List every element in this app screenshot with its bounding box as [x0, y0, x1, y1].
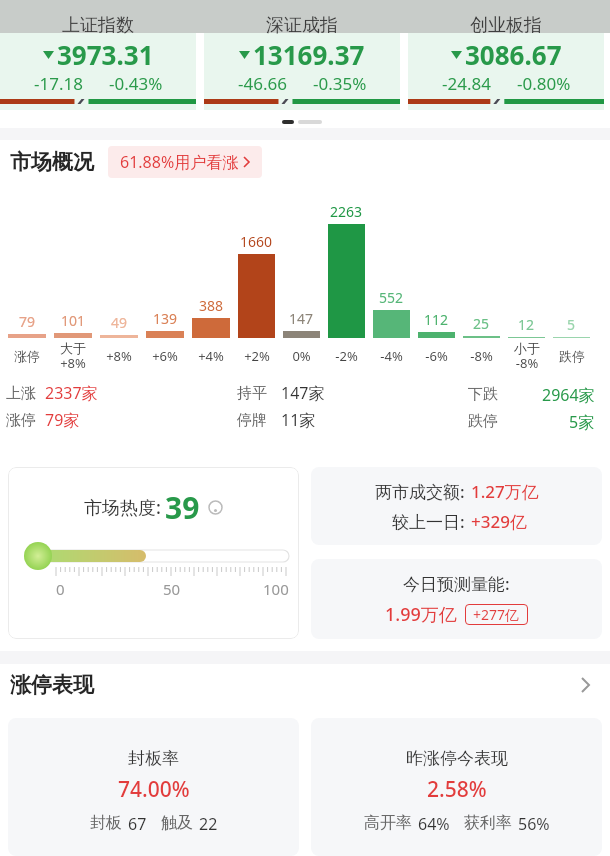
staticText: 101: [61, 311, 86, 330]
staticText: 11家: [281, 409, 316, 431]
staticText: 0%: [292, 347, 311, 365]
staticText: 3973.31: [57, 37, 154, 72]
staticText: 市场概况: [10, 149, 94, 175]
staticText: 5家: [569, 411, 595, 433]
staticText: 1660: [240, 232, 273, 251]
staticText: +6%: [152, 347, 178, 365]
staticText: 13169.37: [253, 37, 365, 72]
staticText: 涨停: [14, 348, 40, 364]
staticText: -0.80%: [517, 72, 571, 95]
staticText: 49: [111, 313, 128, 332]
staticText: 涨停表现: [10, 672, 94, 698]
staticText: 100: [263, 579, 289, 599]
staticText: -2%: [335, 347, 358, 365]
staticText: 67: [128, 813, 147, 835]
staticText: 触及: [161, 813, 193, 833]
staticText: -46.66: [238, 72, 287, 95]
staticText: 两市成交额:: [375, 480, 465, 503]
staticText: 2964家: [542, 384, 595, 406]
staticText: -0.35%: [313, 72, 367, 95]
staticText: 涨停: [6, 411, 36, 430]
staticText: -6%: [425, 347, 448, 365]
staticText: +329亿: [471, 510, 527, 533]
staticText: +4%: [198, 347, 224, 365]
staticText: 388: [199, 296, 224, 315]
button[interactable]: 深证成指: [204, 0, 400, 110]
staticText: 147: [289, 309, 314, 328]
staticText: +2%: [244, 347, 270, 365]
staticText: 79家: [45, 409, 80, 431]
staticText: 1.99万亿: [385, 602, 457, 627]
staticText: 2263: [330, 202, 363, 221]
staticText: +277亿: [473, 605, 520, 624]
staticText: 跌停: [468, 412, 498, 431]
button[interactable]: 涨停表现: [10, 664, 590, 706]
staticText: 获利率: [464, 813, 512, 833]
staticText: 56%: [518, 813, 550, 835]
staticText: -17.18: [34, 72, 83, 95]
staticText: 552: [379, 288, 404, 307]
staticText: 停牌: [237, 411, 267, 430]
button[interactable]: 61.88%用户看涨: [108, 146, 262, 178]
button[interactable]: 昨涨停今表现: [311, 718, 602, 856]
staticText: 1.27万亿: [471, 480, 539, 503]
staticText: 39: [165, 487, 200, 528]
button[interactable]: 市场热度:: [8, 467, 299, 639]
staticText: -0.43%: [109, 72, 163, 95]
staticText: 市场热度:: [84, 495, 161, 520]
staticText: 0: [56, 579, 65, 599]
staticText: 64%: [418, 813, 450, 835]
staticText: 22: [199, 813, 218, 835]
staticText: 今日预测量能:: [403, 572, 510, 595]
staticText: 50: [163, 579, 181, 599]
staticText: -8%: [470, 347, 493, 365]
staticText: 112: [424, 310, 449, 329]
staticText: 上涨: [6, 384, 36, 403]
button[interactable]: 创业板指: [408, 0, 604, 110]
staticText: 147家: [281, 382, 325, 404]
staticText: +8%: [106, 347, 132, 365]
staticText: 昨涨停今表现: [406, 748, 508, 769]
staticText: 深证成指: [266, 14, 338, 37]
staticText: 5: [567, 315, 576, 334]
staticText: 持平: [237, 384, 267, 403]
staticText: 74.00%: [118, 775, 190, 804]
staticText: 139: [153, 309, 178, 328]
staticText: 跌停: [559, 348, 585, 364]
staticText: 高开率: [364, 813, 412, 833]
button[interactable]: 上证指数: [0, 0, 196, 110]
staticText: 79: [19, 312, 36, 331]
staticText: 封板: [90, 813, 122, 833]
staticText: 封板率: [128, 748, 179, 769]
staticText: 小于 -8%: [514, 340, 540, 372]
button[interactable]: 封板率: [8, 718, 299, 856]
staticText: 61.88%用户看涨: [120, 151, 239, 173]
button[interactable]: 今日预测量能:: [311, 559, 602, 639]
button[interactable]: 两市成交额:: [311, 467, 602, 545]
staticText: 2337家: [45, 382, 98, 404]
staticText: 3086.67: [465, 37, 562, 72]
staticText: -24.84: [442, 72, 491, 95]
staticText: 创业板指: [470, 14, 542, 37]
staticText: 大于 +8%: [60, 340, 86, 372]
staticText: 上证指数: [62, 14, 134, 37]
staticText: -4%: [380, 347, 403, 365]
staticText: 2.58%: [427, 775, 487, 804]
staticText: 较上一日:: [392, 510, 465, 533]
staticText: 下跌: [468, 385, 498, 404]
staticText: 25: [473, 314, 490, 333]
staticText: 12: [518, 315, 535, 334]
